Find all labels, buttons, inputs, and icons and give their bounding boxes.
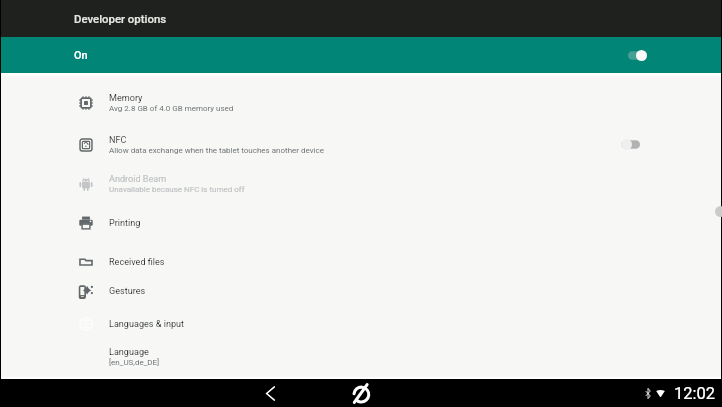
staticText: On xyxy=(74,49,88,62)
staticText: Memory xyxy=(109,93,143,104)
button[interactable]: Home xyxy=(344,379,378,407)
staticText: Unavailable because NFC is turned off xyxy=(109,185,245,194)
button[interactable]: Android Beam xyxy=(1,168,721,199)
staticText: Android Beam xyxy=(109,174,167,185)
button[interactable]: Received files xyxy=(1,247,721,277)
staticText: Language xyxy=(109,347,149,358)
button[interactable]: Language xyxy=(1,342,721,372)
button[interactable]: NFC xyxy=(1,121,721,168)
staticText: Gestures xyxy=(109,286,146,297)
staticText: NFC xyxy=(109,135,127,146)
button[interactable]: Memory xyxy=(1,84,721,121)
staticText: Printing xyxy=(109,218,141,229)
staticText: [en_US,de_DE] xyxy=(109,358,160,367)
button[interactable]: On xyxy=(1,37,721,73)
button[interactable]: Back xyxy=(253,379,287,407)
button[interactable]: Gestures xyxy=(1,277,721,306)
button[interactable]: Printing xyxy=(1,199,721,247)
staticText: Received files xyxy=(109,257,165,268)
staticText: Avg 2.8 GB of 4.0 GB memory used xyxy=(109,104,234,113)
staticText: Allow data exchange when the tablet touc… xyxy=(109,146,324,155)
staticText: Languages & input xyxy=(109,319,185,330)
button[interactable]: Status: bluetooth, wifi, clock xyxy=(645,379,721,407)
staticText: Developer options xyxy=(74,12,167,25)
staticText: 12:02 xyxy=(674,384,716,403)
button[interactable]: Languages & input xyxy=(1,306,721,342)
